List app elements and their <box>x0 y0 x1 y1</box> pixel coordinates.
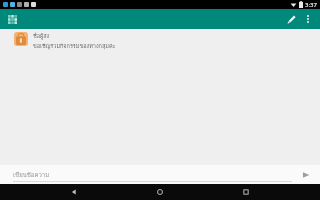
button[interactable]: Back <box>62 184 86 200</box>
button[interactable]: Compose <box>282 10 300 28</box>
button[interactable]: App menu <box>6 13 18 25</box>
staticText: 3:37 <box>305 1 317 9</box>
button[interactable]: Send <box>298 167 314 183</box>
staticText: เขียนข้อความ <box>13 170 50 180</box>
button[interactable]: Recent apps <box>234 184 258 200</box>
button[interactable]: ชื่อผู้ส่ง <box>14 32 280 51</box>
button[interactable]: Home <box>148 184 172 200</box>
button[interactable]: More options <box>300 11 316 27</box>
staticText: ขอเชิญร่วมกิจกรรมของทางกลุ่มค่ะ <box>33 42 116 51</box>
staticText: ชื่อผู้ส่ง <box>33 32 50 41</box>
button[interactable]: เขียนข้อความ <box>13 168 292 182</box>
